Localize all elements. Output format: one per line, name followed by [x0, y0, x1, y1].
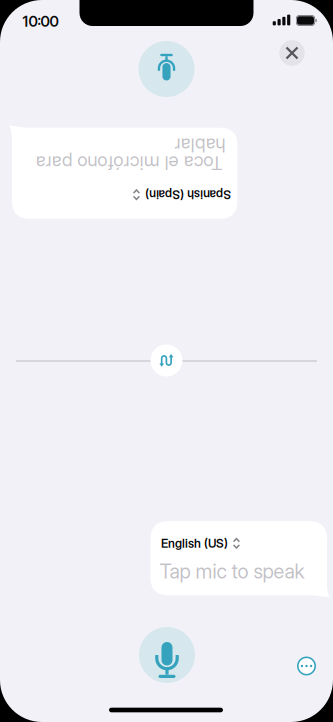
button[interactable]: English (US) [161, 536, 240, 550]
staticText: Tap mic to speak [159, 559, 304, 583]
button[interactable]: Swap languages [150, 344, 182, 376]
button[interactable]: More options [297, 656, 316, 675]
staticText: Spanish (Spain) [18, 145, 104, 159]
button[interactable]: Spanish (Spain) [18, 145, 116, 159]
staticText: English (US) [161, 536, 228, 550]
button[interactable]: Close [279, 40, 305, 66]
button[interactable]: Tap to speak (Spanish) [138, 41, 194, 97]
staticText: Toca el micrófono para [27, 172, 214, 194]
staticText: 10:00 [22, 13, 58, 30]
button[interactable]: Tap to speak (English) [139, 627, 195, 683]
